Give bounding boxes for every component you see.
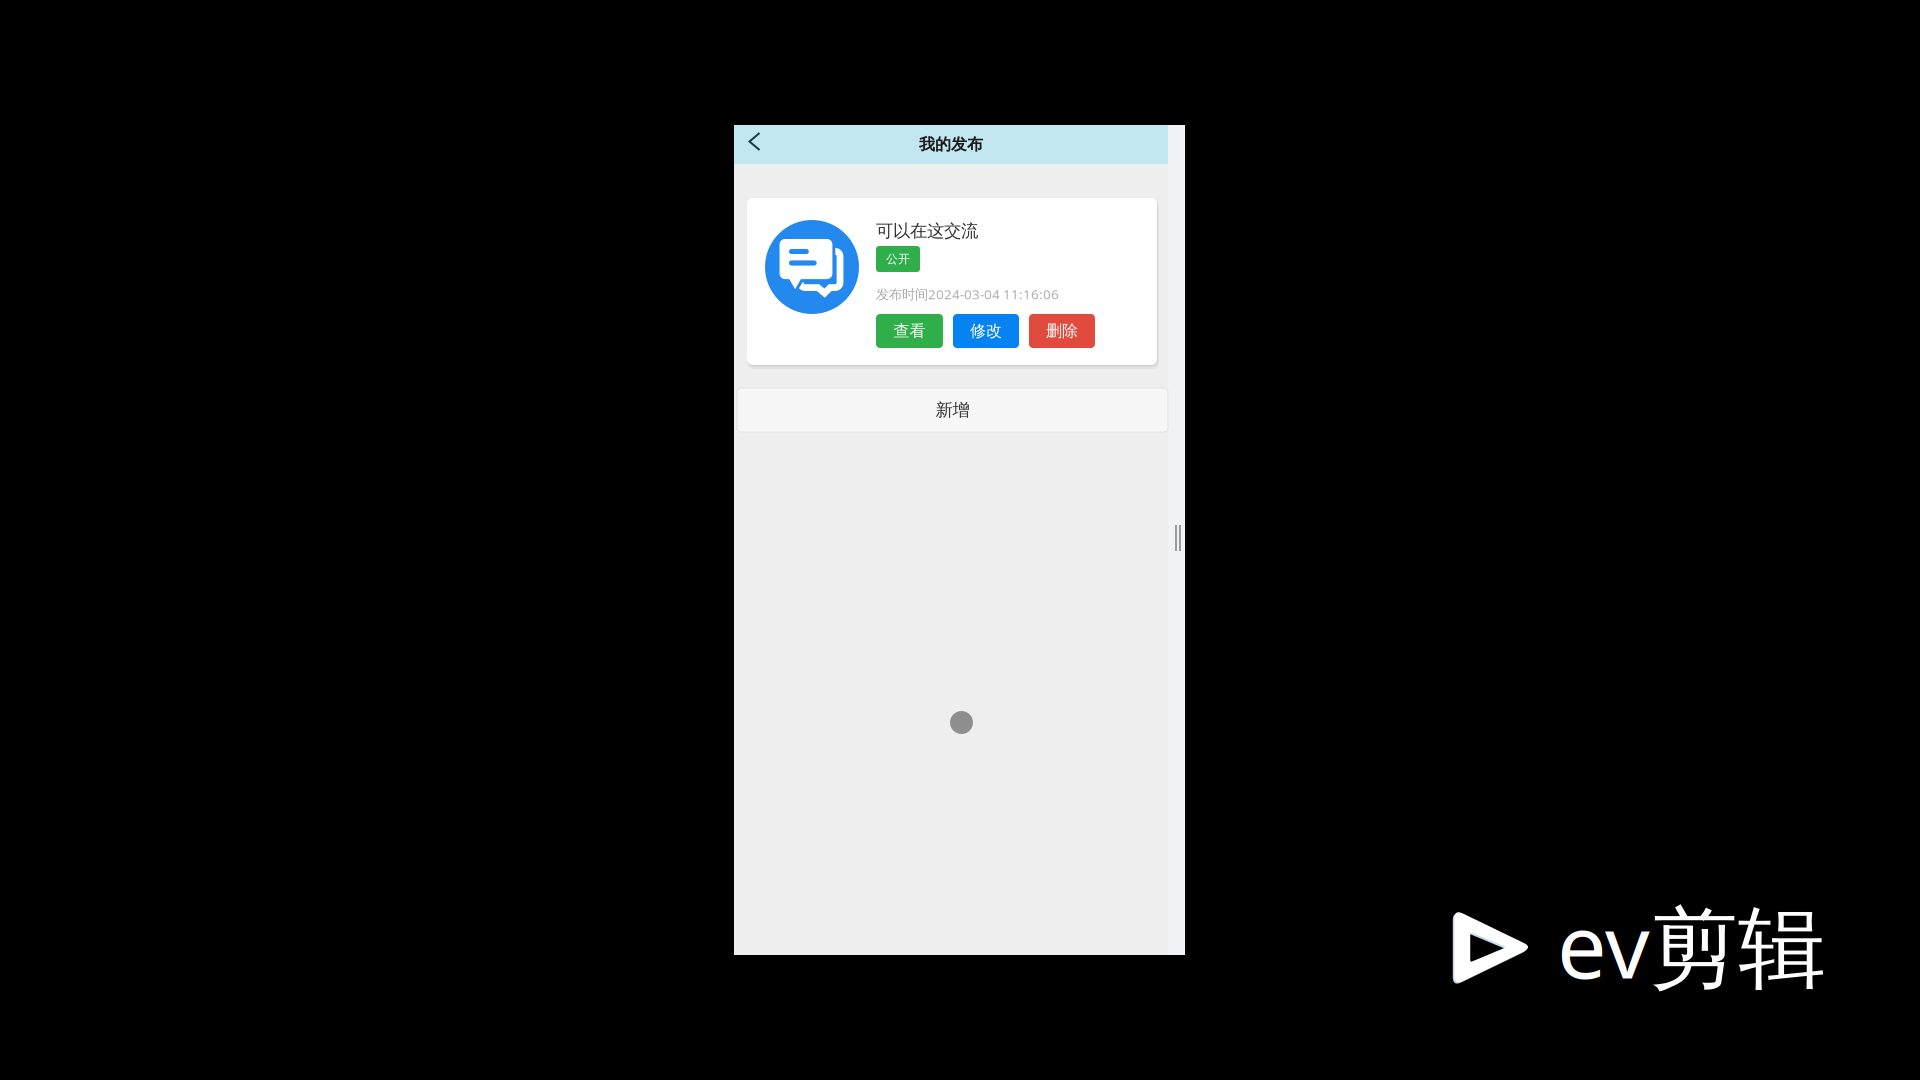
button[interactable]: Back	[734, 125, 775, 158]
staticText: 删除	[1046, 321, 1078, 341]
button[interactable]: 新增	[737, 388, 1168, 432]
staticText: 发布时间2024-03-04 11:16:06	[876, 285, 1059, 303]
button[interactable]: 修改	[953, 314, 1019, 348]
staticText: 新增	[935, 399, 969, 421]
staticText: 修改	[970, 321, 1002, 341]
staticText: 查看	[893, 321, 925, 341]
staticText: ev剪辑	[1557, 886, 1826, 1003]
staticText: 公开	[886, 252, 910, 266]
staticText: 可以在这交流	[876, 220, 978, 242]
button[interactable]: 查看	[876, 314, 943, 348]
button[interactable]: 删除	[1029, 314, 1095, 348]
staticText: 我的发布	[919, 135, 983, 154]
